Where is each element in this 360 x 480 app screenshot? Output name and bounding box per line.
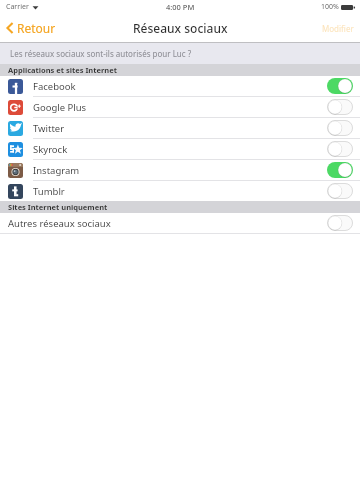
button[interactable]: Off [327,99,353,115]
staticText: Carrier [6,2,29,12]
staticText: Les réseaux sociaux sont-ils autorisés p… [10,48,192,59]
staticText: Réseaux sociaux [133,20,228,36]
staticText: 100% [321,2,339,12]
button[interactable]: Off [327,141,353,157]
button[interactable]: On [327,162,353,178]
button[interactable]: Skyrock [0,139,360,159]
button[interactable]: Google Plus [0,97,360,117]
button[interactable]: Off [327,120,353,136]
button[interactable]: Retour [0,16,64,40]
staticText: Twitter [33,122,65,135]
button[interactable]: Facebook [0,76,360,96]
staticText: Skyrock [33,143,68,156]
staticText: Autres réseaux sociaux [8,217,111,230]
button[interactable]: On [327,78,353,94]
staticText: Retour [17,20,56,36]
button[interactable]: Off [327,183,353,199]
staticText: 4:00 PM [166,2,195,12]
button[interactable]: Off [327,215,353,231]
staticText: Facebook [33,80,76,93]
button[interactable]: Modifier [322,23,360,34]
staticText: Sites Internet uniquement [8,202,108,212]
button[interactable]: Tumblr [0,181,360,201]
button[interactable]: Twitter [0,118,360,138]
staticText: Applications et sites Internet [8,65,117,75]
staticText: Tumblr [33,185,65,198]
button[interactable]: Autres réseaux sociaux [0,213,360,233]
staticText: Modifier [322,23,354,34]
staticText: Instagram [33,164,80,177]
button[interactable]: Instagram [0,160,360,180]
staticText: Google Plus [33,101,87,114]
